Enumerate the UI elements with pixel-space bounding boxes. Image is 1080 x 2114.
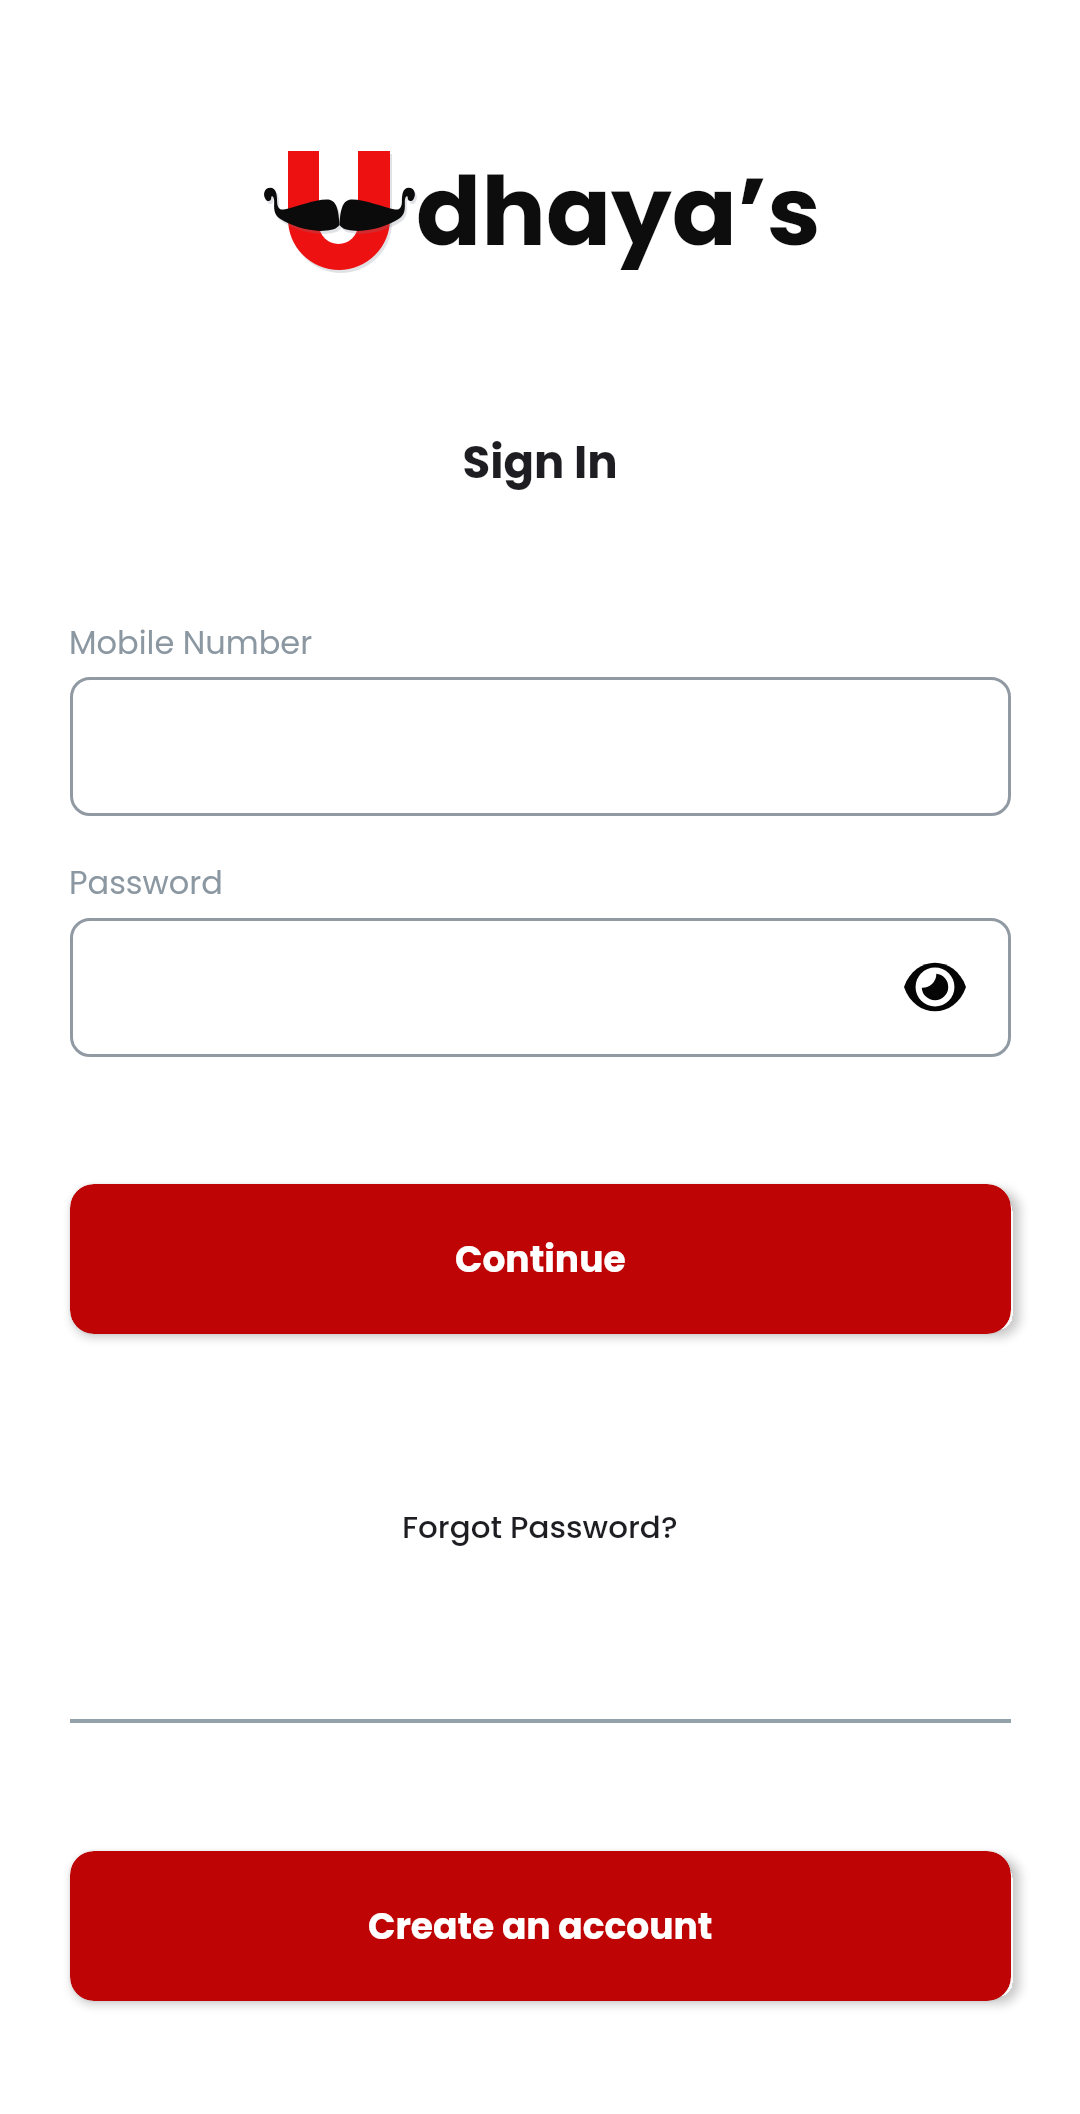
button[interactable]: Show password bbox=[894, 946, 976, 1028]
button[interactable] bbox=[70, 677, 1011, 816]
button[interactable]: Continue bbox=[70, 1184, 1011, 1334]
button[interactable] bbox=[70, 918, 1011, 1057]
button[interactable]: Create an account bbox=[70, 1851, 1011, 2001]
staticText: Mobile Number bbox=[69, 620, 313, 665]
staticText: Continue bbox=[455, 1234, 626, 1284]
staticText: Password bbox=[69, 860, 223, 905]
button[interactable]: Forgot Password? bbox=[330, 1489, 750, 1563]
staticText: Forgot Password? bbox=[402, 1505, 678, 1548]
staticText: dhaya’s bbox=[416, 144, 821, 278]
staticText: Create an account bbox=[368, 1901, 713, 1951]
staticText: Sign In bbox=[0, 431, 1080, 494]
